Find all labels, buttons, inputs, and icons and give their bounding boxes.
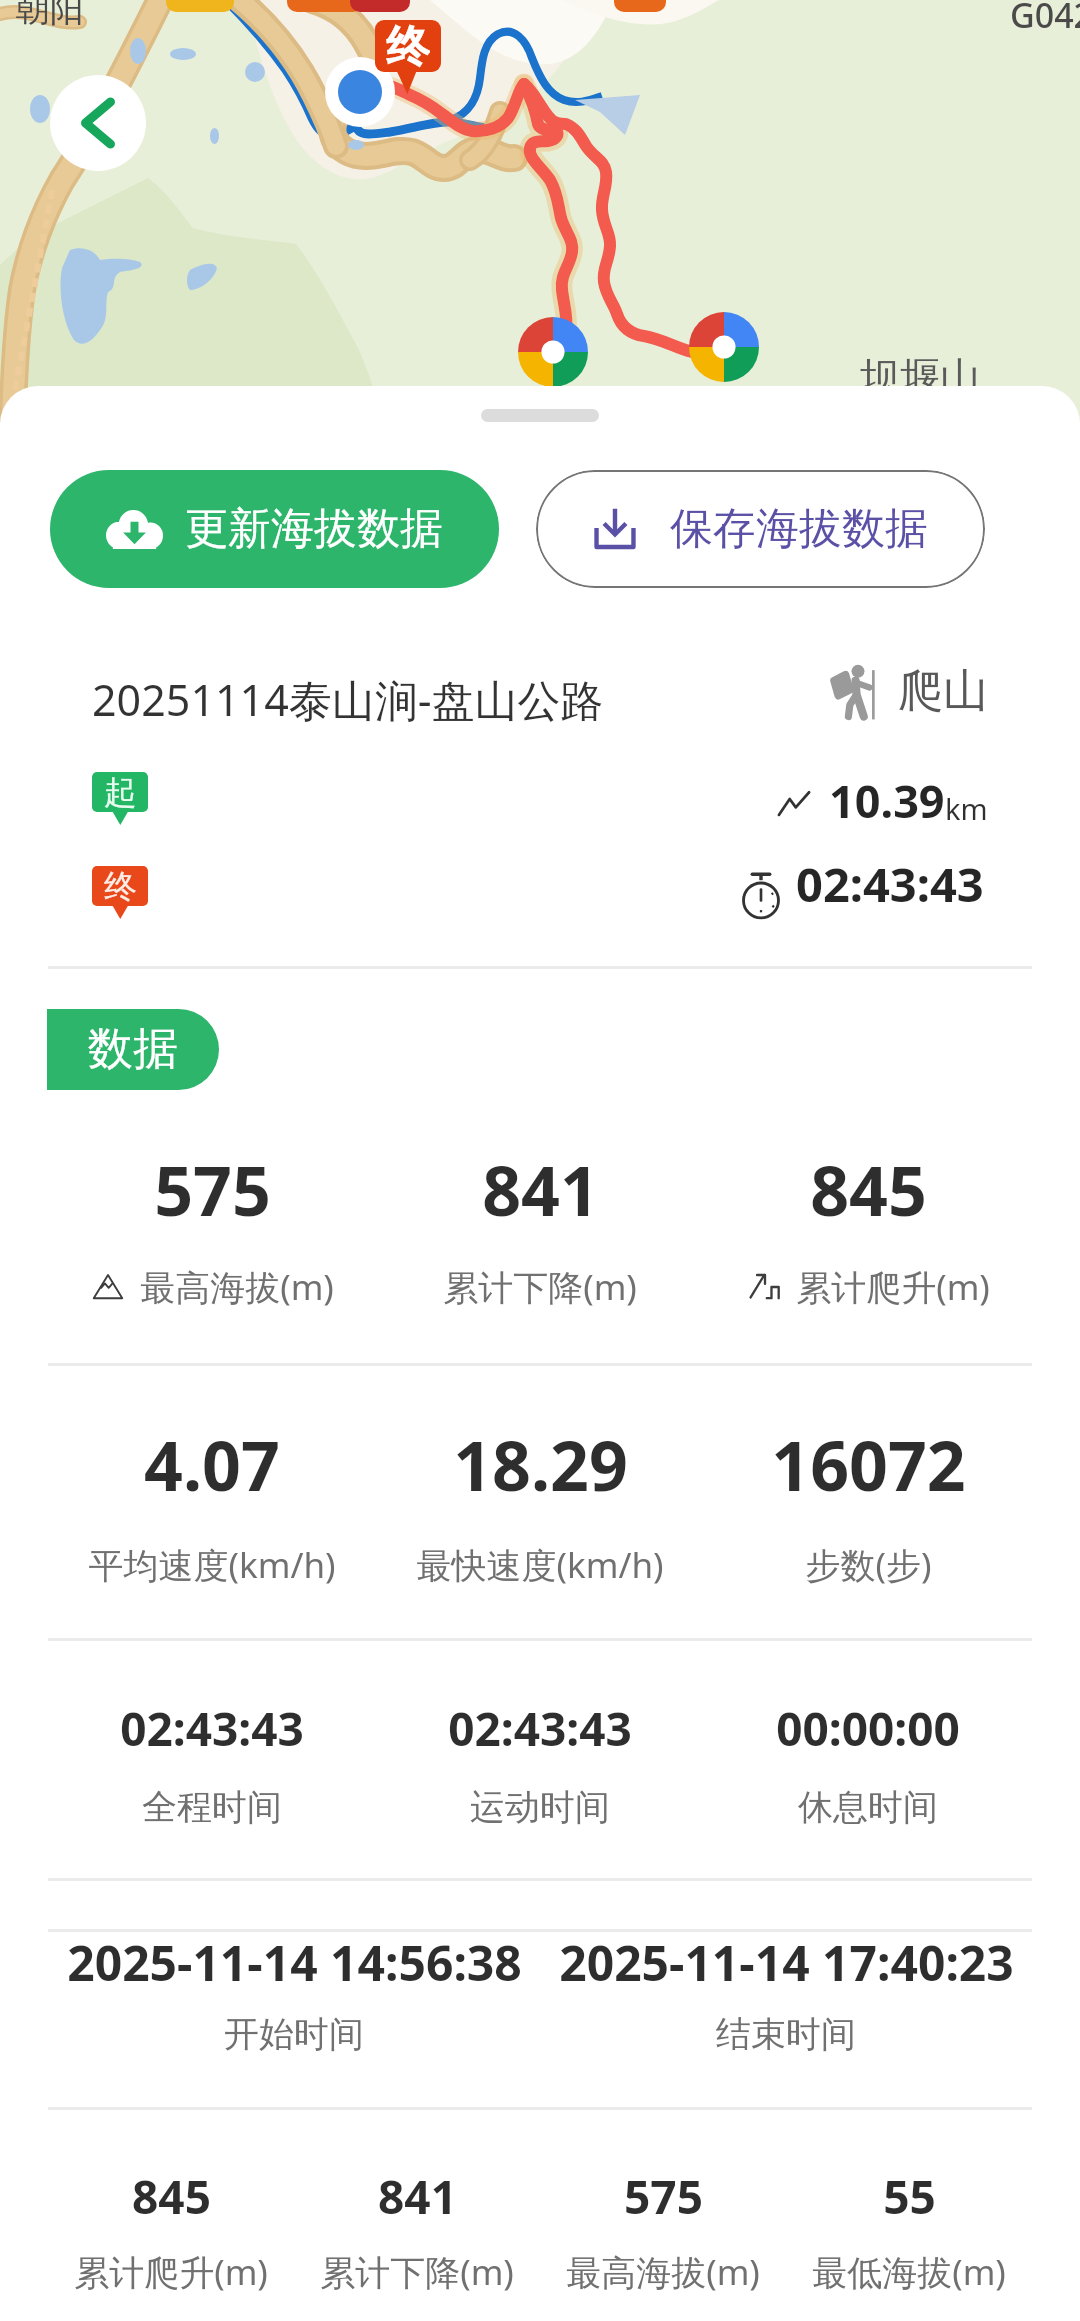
staticText: 朝阳 — [16, 0, 84, 31]
staticText: 575 — [624, 2165, 703, 2228]
staticText: 保存海拔数据 — [670, 502, 928, 556]
staticText: 终 — [386, 20, 430, 72]
staticText: 爬山 — [898, 663, 988, 720]
staticText: 最高海拔(m) — [566, 2248, 760, 2296]
button[interactable]: Back — [50, 75, 146, 171]
staticText: 16072 — [771, 1418, 966, 1511]
staticText: 2025-11-14 17:40:23 — [559, 1930, 1014, 1995]
staticText: 845 — [810, 1143, 927, 1236]
staticText: 累计下降(m) — [443, 1263, 637, 1311]
staticText: 02:43:43 — [448, 1697, 632, 1760]
staticText: 20251114泰山涧-盘山公路 — [92, 670, 604, 729]
staticText: 更新海拔数据 — [185, 502, 443, 556]
staticText: 845 — [132, 2165, 211, 2228]
staticText: 步数(步) — [805, 1541, 932, 1589]
staticText: 4.07 — [144, 1418, 280, 1511]
staticText: 起 — [104, 772, 137, 812]
staticText: 最低海拔(m) — [812, 2248, 1006, 2296]
staticText: 最快速度(km/h) — [416, 1541, 664, 1589]
staticText: 休息时间 — [798, 1785, 938, 1829]
staticText: 终 — [104, 866, 137, 906]
staticText: km — [945, 789, 988, 828]
staticText: 10.39 — [829, 770, 945, 831]
staticText: 累计爬升(m) — [796, 1263, 990, 1311]
button[interactable]: 保存海拔数据 — [536, 470, 985, 588]
staticText: 841 — [378, 2165, 457, 2228]
staticText: 最高海拔(m) — [140, 1263, 334, 1311]
button[interactable]: 更新海拔数据 — [50, 470, 499, 588]
staticText: 平均速度(km/h) — [88, 1541, 336, 1589]
staticText: 开始时间 — [224, 2012, 364, 2056]
staticText: 02:43:43 — [796, 852, 984, 916]
staticText: 02:43:43 — [120, 1697, 304, 1760]
staticText: 全程时间 — [142, 1785, 282, 1829]
staticText: 坝堰山 — [860, 352, 980, 402]
staticText: 55 — [883, 2165, 936, 2228]
staticText: 2025-11-14 14:56:38 — [67, 1930, 522, 1995]
staticText: 18.29 — [453, 1418, 628, 1511]
staticText: G042 — [1010, 0, 1080, 38]
staticText: 累计爬升(m) — [74, 2248, 268, 2296]
staticText: 00:00:00 — [776, 1697, 960, 1760]
staticText: 575 — [154, 1143, 271, 1236]
button[interactable]: 数据 — [47, 1009, 219, 1090]
staticText: 841 — [482, 1143, 599, 1236]
staticText: 结束时间 — [716, 2012, 856, 2056]
staticText: 运动时间 — [470, 1785, 610, 1829]
staticText: 累计下降(m) — [320, 2248, 514, 2296]
staticText: 数据 — [88, 1021, 178, 1078]
